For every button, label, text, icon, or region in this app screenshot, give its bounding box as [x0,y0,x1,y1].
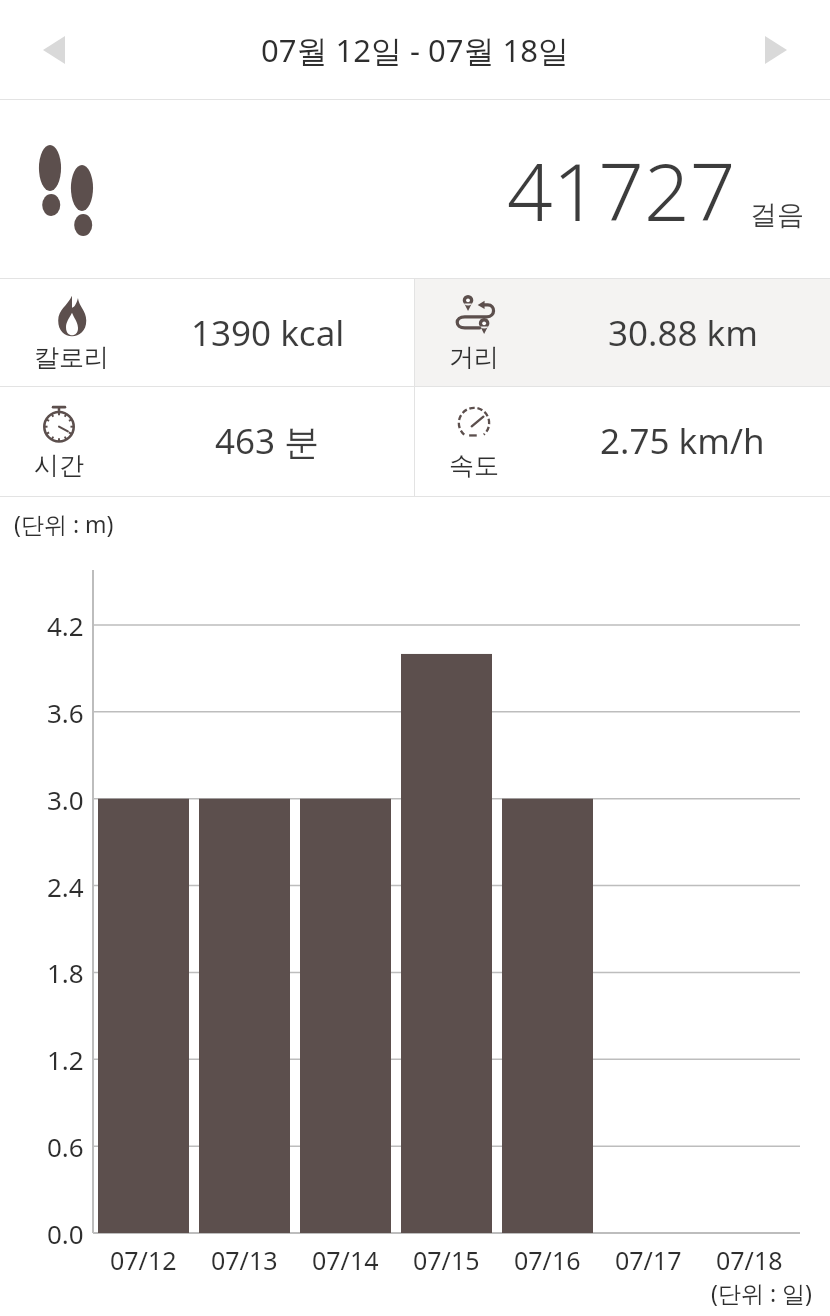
staticText: 07/16 [514,1243,581,1277]
staticText: 1390 kcal [191,309,345,357]
button[interactable]: 시간 [0,387,415,494]
button[interactable]: 속도 [415,387,830,494]
staticText: 3.6 [47,695,84,730]
staticText: 거리 [449,342,499,373]
staticText: 41727 [507,135,736,244]
staticText: 3.0 [47,782,84,817]
button[interactable]: 칼로리 [0,279,415,386]
staticText: 1.2 [47,1042,84,1077]
staticText: 30.88 km [608,309,758,357]
staticText: 07월 12일 - 07월 18일 [261,29,570,71]
staticText: 2.4 [47,869,84,904]
staticText: 속도 [449,450,499,481]
staticText: 07/14 [312,1243,379,1277]
staticText: 걸음 [750,198,804,232]
staticText: 07/18 [716,1243,783,1277]
staticText: 0.6 [47,1129,84,1164]
staticText: 07/15 [413,1243,480,1277]
staticText: 4.2 [47,608,84,643]
staticText: 시간 [34,450,84,481]
staticText: 2.75 km/h [600,417,765,465]
staticText: 07/13 [211,1243,278,1277]
staticText: (단위 : 일) [711,1277,812,1308]
button[interactable]: 거리 [415,279,830,386]
button[interactable]: 41727 [0,100,830,278]
button[interactable]: Next week [748,22,804,78]
staticText: 1.8 [47,955,84,990]
staticText: (단위 : m) [14,508,114,539]
staticText: 07/12 [110,1243,177,1277]
staticText: 칼로리 [34,342,109,373]
staticText: 463 분 [215,417,320,465]
staticText: 0.0 [47,1216,84,1251]
staticText: 07/17 [615,1243,682,1277]
button[interactable]: Previous week [26,22,82,78]
